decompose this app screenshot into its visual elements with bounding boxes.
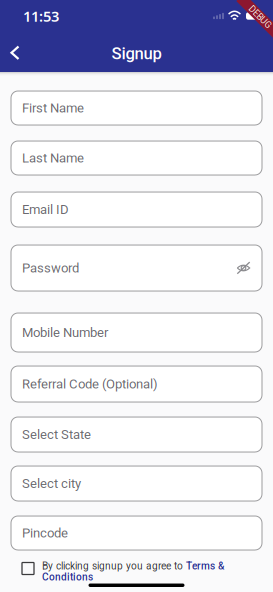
button[interactable]: Referral Code (Optional) [11,366,262,402]
button[interactable]: Select State [11,417,262,452]
button[interactable]: Agree to terms [22,560,34,574]
button[interactable]: Select city [11,466,262,501]
staticText: Pincode [22,525,68,541]
staticText: Last Name [22,150,84,166]
staticText: Mobile Number [22,325,108,340]
staticText: DEBUG [246,12,273,22]
staticText: Select city [22,476,81,491]
staticText: Signup [111,44,161,63]
button[interactable]: Pincode [11,516,262,550]
button[interactable]: Back [0,32,30,72]
button[interactable]: Conditions [42,571,93,582]
staticText: Referral Code (Optional) [22,376,158,392]
staticText: Password [22,260,79,276]
staticText: Conditions [42,571,93,583]
button[interactable]: First Name [11,91,262,125]
staticText: Email ID [22,202,69,217]
staticText: By clicking signup you agree to [42,560,186,572]
staticText: 11:53 [23,6,59,26]
staticText: Terms & [186,560,224,572]
staticText: Select State [22,427,91,442]
button[interactable]: Last Name [11,141,262,175]
button[interactable]: Mobile Number [11,313,262,352]
button[interactable]: Terms & [186,560,224,572]
button[interactable]: Password [11,245,262,291]
button[interactable]: Email ID [11,192,262,227]
staticText: First Name [22,100,84,116]
